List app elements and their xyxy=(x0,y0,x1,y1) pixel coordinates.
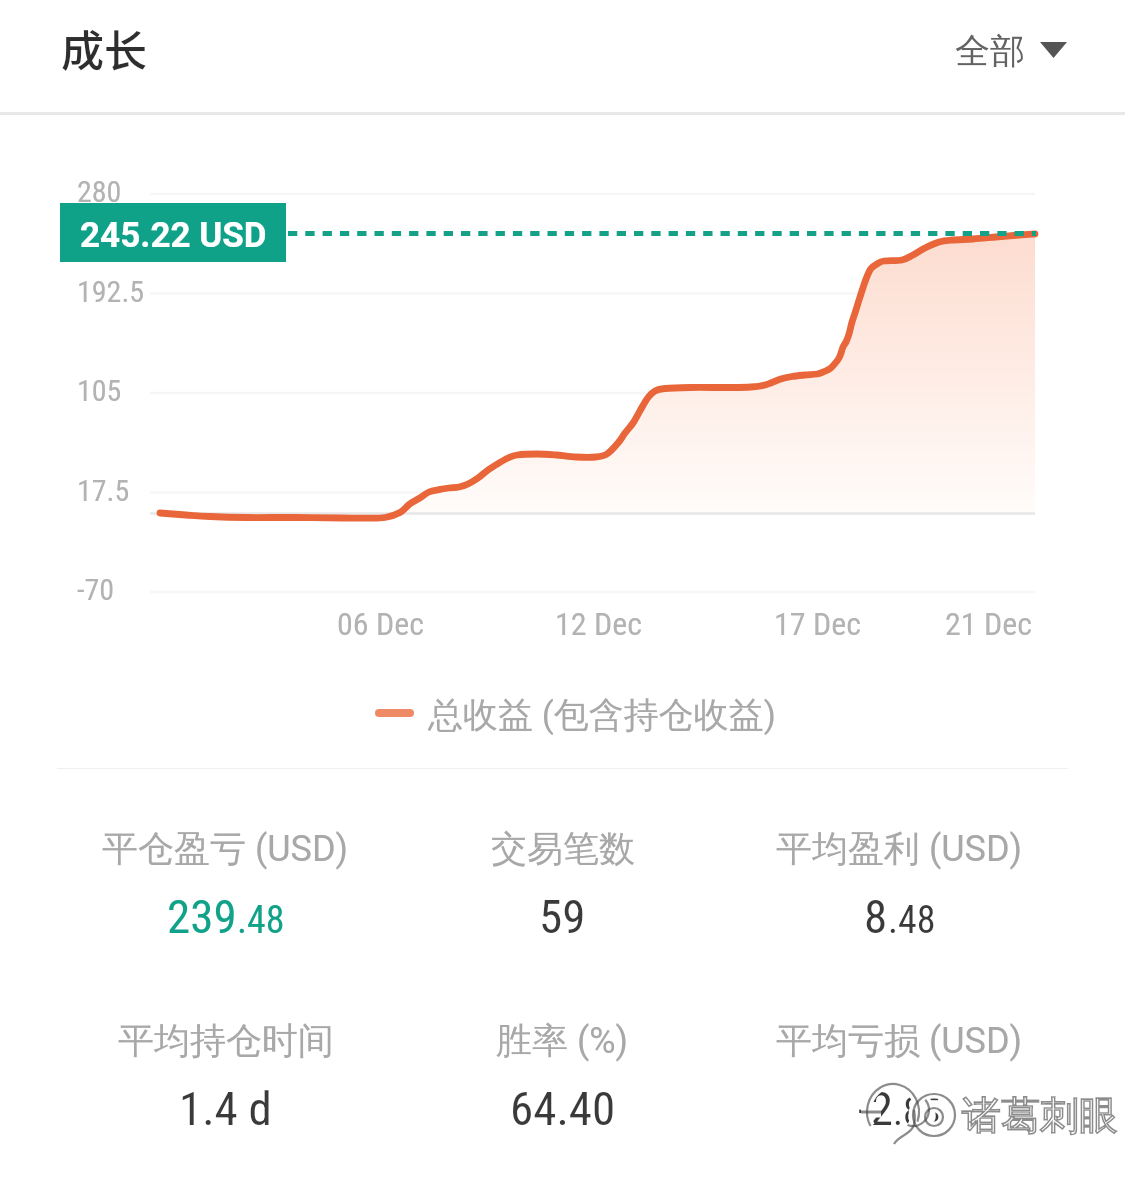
button[interactable]: 平均亏损 (USD) xyxy=(731,1018,1068,1136)
staticText: 1.4 d xyxy=(179,1081,272,1136)
staticText: -2 xyxy=(858,1081,893,1136)
staticText: 胜率 (%) xyxy=(496,1018,629,1063)
button[interactable]: 平均持仓时间 xyxy=(57,1018,394,1136)
staticText: 全部 xyxy=(955,29,1025,73)
staticText: 总收益 (包含持仓收益) xyxy=(428,693,776,737)
button[interactable]: 平仓盈亏 (USD) xyxy=(57,826,394,944)
staticText: 17 Dec xyxy=(774,605,861,643)
button[interactable]: 胜率 (%) xyxy=(394,1018,731,1136)
staticText: 280 xyxy=(77,174,122,209)
button[interactable]: 245.22 USD xyxy=(60,203,286,262)
staticText: 成长 xyxy=(61,17,147,79)
staticText: 平均盈利 (USD) xyxy=(776,826,1023,871)
staticText: 交易笔数 xyxy=(491,826,635,871)
staticText: 17.5 xyxy=(77,473,130,508)
staticText: 239 xyxy=(167,889,237,944)
button[interactable]: 平均盈利 (USD) xyxy=(731,826,1068,944)
staticText: 21 Dec xyxy=(945,605,1032,643)
staticText: .85 xyxy=(893,1090,941,1135)
staticText: 诸葛刺眼 xyxy=(962,1091,1118,1140)
button[interactable]: 全部 xyxy=(925,15,1125,95)
staticText: 245.22 USD xyxy=(80,215,267,256)
staticText: 06 Dec xyxy=(337,605,424,643)
staticText: 平仓盈亏 (USD) xyxy=(102,826,349,871)
staticText: 12 Dec xyxy=(555,605,642,643)
staticText: .48 xyxy=(888,898,936,943)
staticText: 诸葛刺眼 xyxy=(962,1091,1118,1140)
button[interactable]: 交易笔数 xyxy=(394,826,731,944)
staticText: 59 xyxy=(539,889,586,944)
staticText: 8 xyxy=(864,889,888,944)
button[interactable]: 总收益 (包含持仓收益) xyxy=(376,690,776,736)
staticText: 64.40 xyxy=(510,1081,616,1136)
staticText: .48 xyxy=(237,898,285,943)
staticText: -70 xyxy=(77,572,115,607)
staticText: 192.5 xyxy=(77,274,145,309)
staticText: 105 xyxy=(77,373,122,408)
other: Filter xyxy=(1040,42,1067,58)
staticText: 平均亏损 (USD) xyxy=(776,1018,1023,1063)
staticText: 平均持仓时间 xyxy=(118,1018,334,1063)
